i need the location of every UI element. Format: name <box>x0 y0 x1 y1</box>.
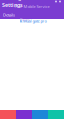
staticText: Annual gate pro <box>19 18 46 24</box>
button[interactable]: Pages <box>17 16 33 22</box>
staticText: Pages <box>20 17 30 22</box>
staticText: XY Blug Status Settings <box>2 0 38 9</box>
button[interactable]: Search <box>55 0 57 2</box>
staticText: Details <box>3 12 15 18</box>
button[interactable]: Details <box>1 16 17 22</box>
button[interactable]: More <box>59 0 61 2</box>
staticText: Poor Mobile Service <box>14 4 49 9</box>
